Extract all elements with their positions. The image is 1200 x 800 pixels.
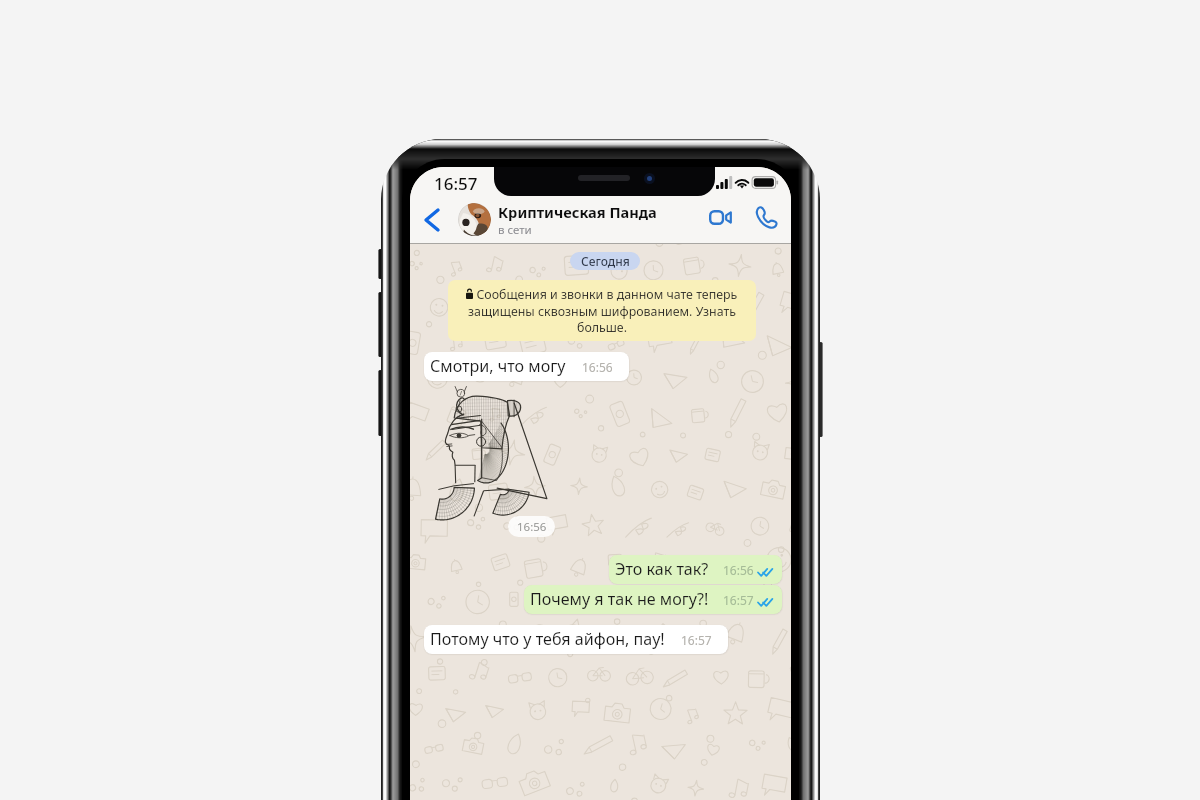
staticText: Криптическая Панда <box>498 202 657 222</box>
staticText: 16:57 <box>723 592 754 608</box>
button[interactable]: Video call <box>697 193 743 242</box>
staticText: 16:56 <box>517 519 547 535</box>
staticText: Смотри, что могу <box>430 355 566 377</box>
button[interactable]: Voice call <box>743 193 789 242</box>
staticText: 16:56 <box>582 359 613 375</box>
staticText: 16:57 <box>434 172 478 195</box>
staticText: Почему я так не могу?! <box>530 588 709 610</box>
staticText: Сообщения и звонки в данном чате теперь … <box>459 286 745 335</box>
button[interactable]: Back <box>414 195 450 244</box>
staticText: Сегодня <box>581 253 630 269</box>
button[interactable]: Смотри, что могу <box>424 352 629 381</box>
staticText: Потому что у тебя айфон, пау! <box>430 628 665 650</box>
staticText: Это как так? <box>615 558 709 580</box>
button[interactable]: Сообщения и звонки в данном чате теперь … <box>448 280 756 341</box>
staticText: в сети <box>498 222 532 238</box>
staticText: 16:57 <box>681 632 712 648</box>
button[interactable]: Криптическая Панда <box>458 195 693 244</box>
staticText: 16:56 <box>723 562 754 578</box>
button[interactable]: Сегодня <box>570 252 640 270</box>
button[interactable]: Почему я так не могу?! <box>524 585 782 614</box>
button[interactable]: Потому что у тебя айфон, пау! <box>424 625 728 654</box>
button[interactable]: Это как так? <box>609 555 782 584</box>
button[interactable]: Sticker: pharaoh <box>435 386 548 517</box>
